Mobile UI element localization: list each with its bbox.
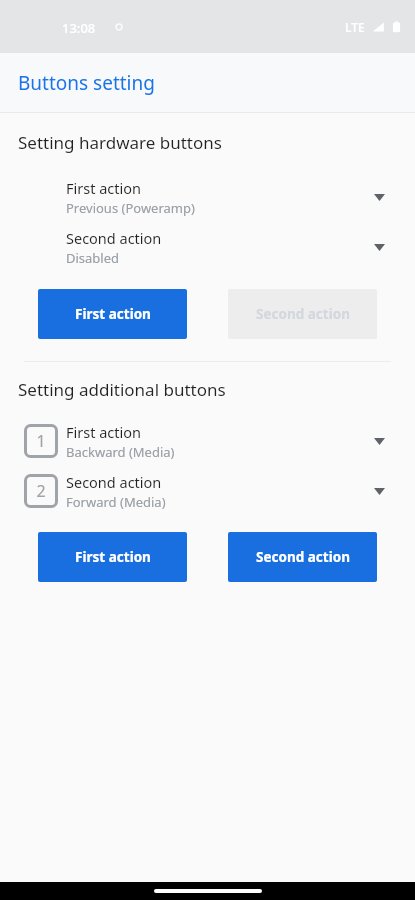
button[interactable]: Second action (0, 222, 415, 272)
staticText: Previous (Poweramp) (66, 199, 195, 217)
staticText: 2 (36, 480, 46, 502)
button[interactable]: First action (38, 289, 187, 339)
staticText: LTE (345, 19, 365, 35)
staticText: Second action (66, 228, 162, 248)
button[interactable]: 2 (0, 466, 415, 516)
staticText: First action (66, 178, 142, 198)
staticText: 1 (36, 430, 46, 452)
staticText: Second action (66, 472, 162, 492)
button[interactable]: 1 (0, 416, 415, 466)
staticText: Forward (Media) (66, 493, 166, 511)
staticText: First action (66, 422, 142, 442)
button[interactable]: Second action (228, 532, 377, 582)
button[interactable]: Second action (228, 289, 377, 339)
button[interactable]: First action (0, 172, 415, 222)
other: Open dropdown (367, 185, 391, 209)
staticText: Setting hardware buttons (18, 131, 222, 154)
staticText: Second action (256, 305, 350, 323)
staticText: 13:08 (62, 19, 96, 37)
staticText: Setting additional buttons (18, 378, 226, 401)
staticText: Backward (Media) (66, 443, 175, 461)
staticText: First action (75, 548, 151, 566)
staticText: Disabled (66, 249, 120, 267)
other: Open dropdown (367, 235, 391, 259)
button[interactable]: First action (38, 532, 187, 582)
staticText: Buttons setting (18, 70, 155, 96)
staticText: First action (75, 305, 151, 323)
other: Open dropdown (367, 429, 391, 453)
staticText: Second action (256, 548, 350, 566)
other: Open dropdown (367, 479, 391, 503)
